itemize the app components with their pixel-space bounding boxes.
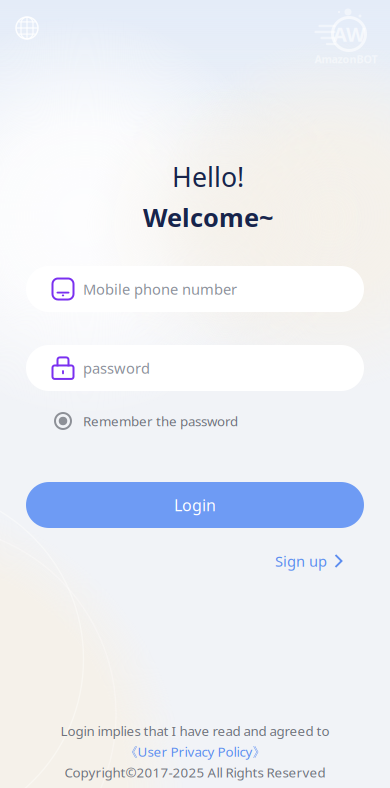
staticText: Remember the password bbox=[83, 412, 238, 430]
staticText: AW bbox=[333, 21, 365, 47]
staticText: Sign up bbox=[275, 551, 327, 571]
staticText: Login implies that I have read and agree… bbox=[60, 722, 329, 740]
staticText: Hello! bbox=[172, 159, 244, 194]
staticText: 《User Privacy Policy》 bbox=[124, 743, 265, 760]
button[interactable]: Sign up bbox=[275, 548, 344, 574]
staticText: Welcome~ bbox=[143, 200, 273, 234]
button[interactable]: 《User Privacy Policy》 bbox=[124, 743, 265, 760]
staticText: AmazonBOT bbox=[314, 52, 377, 66]
button[interactable]: Login bbox=[26, 482, 364, 528]
staticText: Mobile phone number bbox=[83, 279, 237, 299]
staticText: password bbox=[83, 358, 150, 378]
button[interactable]: Remember the password bbox=[54, 406, 314, 436]
button[interactable]: Language bbox=[6, 7, 48, 49]
staticText: Copyright©2017-2025 All Rights Reserved bbox=[64, 763, 325, 781]
staticText: Login bbox=[174, 494, 216, 516]
